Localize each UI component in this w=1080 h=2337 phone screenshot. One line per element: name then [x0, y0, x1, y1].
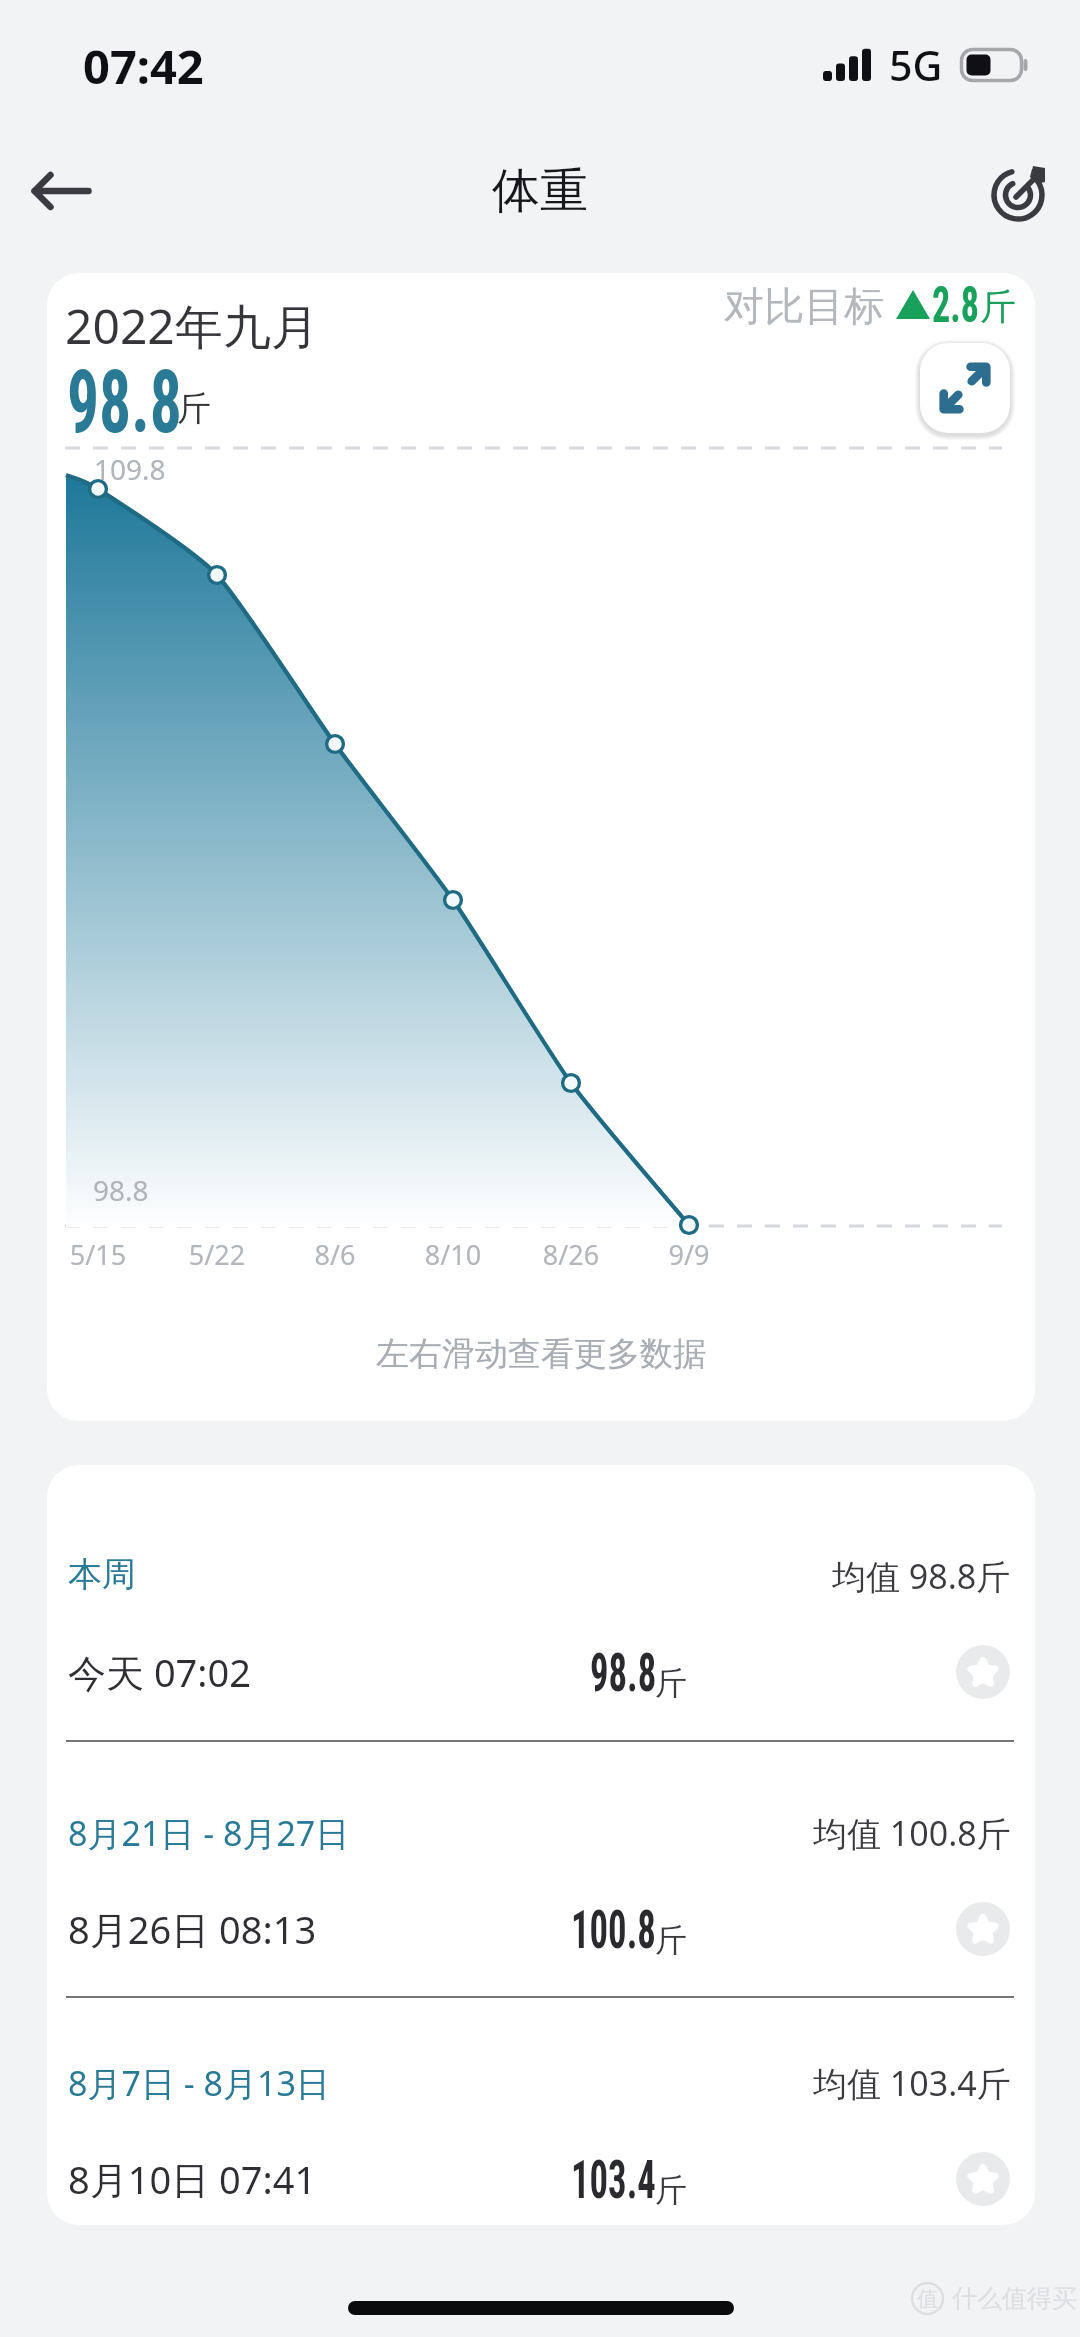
staticText: 8/6: [275, 1236, 395, 1273]
button[interactable]: 8月26日 08:13: [47, 1885, 1035, 1973]
staticText: 5/15: [47, 1236, 158, 1273]
staticText: 8月21日 - 8月27日: [68, 1810, 350, 1856]
staticText: 8/10: [393, 1236, 513, 1273]
staticText: 对比目标: [724, 281, 884, 331]
staticText: 9/9: [629, 1236, 749, 1273]
staticText: 2.8: [932, 276, 979, 335]
staticText: 5/22: [157, 1236, 277, 1273]
staticText: 均值 100.8斤: [813, 1810, 1011, 1856]
staticText: 98.8: [590, 1641, 657, 1704]
button[interactable]: Favorite: [956, 1902, 1010, 1956]
staticText: 左右滑动查看更多数据: [376, 1333, 706, 1375]
button[interactable]: Back: [9, 143, 105, 239]
staticText: 98.8: [93, 1171, 149, 1209]
staticText: 本周: [68, 1553, 136, 1596]
staticText: 8月26日 08:13: [68, 1903, 317, 1955]
staticText: 均值 98.8斤: [832, 1553, 1011, 1599]
button[interactable]: Favorite: [956, 2152, 1010, 2206]
staticText: 什么值得买: [952, 2283, 1077, 2314]
staticText: 斤: [655, 1663, 687, 1703]
button[interactable]: Expand chart: [920, 343, 1010, 433]
staticText: 98.8: [67, 351, 182, 453]
button[interactable]: 今天 07:02: [47, 1628, 1035, 1716]
staticText: 103.4: [571, 2148, 656, 2211]
staticText: 斤: [655, 1920, 687, 1960]
staticText: 8月7日 - 8月13日: [68, 2060, 330, 2106]
staticText: 今天 07:02: [68, 1646, 252, 1698]
staticText: 均值 103.4斤: [813, 2060, 1011, 2106]
button[interactable]: Favorite: [956, 1645, 1010, 1699]
button[interactable]: Goal: [978, 147, 1066, 235]
staticText: 值: [917, 2286, 938, 2312]
staticText: 109.8: [94, 450, 166, 488]
staticText: 2022年九月: [65, 293, 319, 359]
staticText: 8/26: [511, 1236, 631, 1273]
staticText: 5G: [889, 37, 943, 93]
staticText: 斤: [177, 387, 211, 430]
staticText: 斤: [980, 284, 1016, 329]
staticText: 8月10日 07:41: [68, 2153, 317, 2205]
staticText: 斤: [655, 2170, 687, 2210]
staticText: 100.8: [571, 1898, 656, 1961]
staticText: 体重: [492, 161, 588, 221]
button[interactable]: 8月10日 07:41: [47, 2135, 1035, 2223]
staticText: 07:42: [83, 34, 204, 98]
